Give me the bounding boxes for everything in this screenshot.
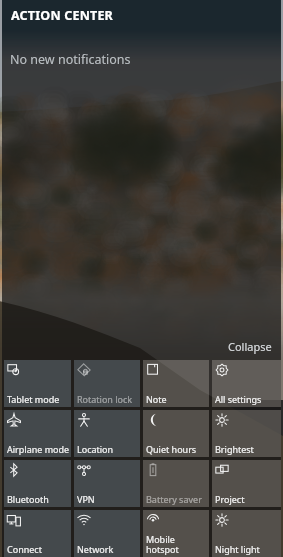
button[interactable]: Quiet hours [143,410,209,457]
staticText: Bluetooth [7,493,49,505]
button[interactable]: Bluetooth [4,460,71,507]
staticText: Mobile hotspot [146,533,208,555]
staticText: ACTION CENTER [11,7,114,24]
staticText: Battery saver [146,493,202,505]
button[interactable]: Collapse [228,339,281,360]
button[interactable]: Rotation lock [74,360,140,407]
staticText: Location [77,443,114,455]
button[interactable]: Battery saver [143,460,209,507]
button[interactable]: Brightest [212,410,281,457]
button[interactable]: VPN [74,460,140,507]
staticText: No new notifications [10,51,131,68]
staticText: Brightest [215,443,254,455]
button[interactable]: Tablet mode [4,360,71,407]
staticText: Collapse [228,339,272,354]
button[interactable]: Connect [4,510,71,557]
staticText: Connect [7,543,42,555]
staticText: Airplane mode [7,443,70,455]
staticText: Network [77,543,114,555]
button[interactable]: Location [74,410,140,457]
button[interactable]: Airplane mode [4,410,71,457]
button[interactable]: Mobile hotspot [143,510,209,557]
button[interactable]: Project [212,460,281,507]
button[interactable]: All settings [212,360,281,407]
button[interactable]: Network [74,510,140,557]
staticText: Project [215,493,245,505]
staticText: Rotation lock [77,393,133,405]
staticText: Quiet hours [146,443,197,455]
staticText: Night light [215,543,260,555]
staticText: All settings [215,393,262,405]
staticText: VPN [77,493,95,505]
staticText: Tablet mode [7,393,60,405]
button[interactable]: Night light [212,510,281,557]
staticText: Note [146,393,167,405]
button[interactable]: Note [143,360,209,407]
